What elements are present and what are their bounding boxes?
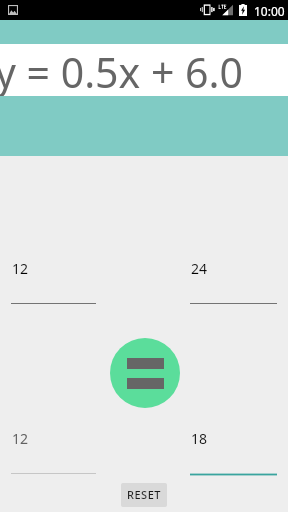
staticText: y = 0.5x + 6.0 [0, 44, 243, 96]
staticText: 12 [12, 429, 29, 448]
staticText: 18 [191, 429, 208, 448]
button[interactable]: 24 [190, 259, 277, 303]
staticText: 12 [12, 259, 29, 278]
button[interactable]: 12 [11, 429, 96, 473]
button[interactable]: RESET [121, 483, 167, 507]
button[interactable]: Calculate [110, 338, 180, 408]
button[interactable]: 18 [190, 429, 277, 473]
staticText: 24 [191, 259, 208, 278]
staticText: RESET [127, 487, 161, 502]
staticText: 10:00 [254, 3, 285, 19]
button[interactable]: 12 [11, 259, 96, 303]
